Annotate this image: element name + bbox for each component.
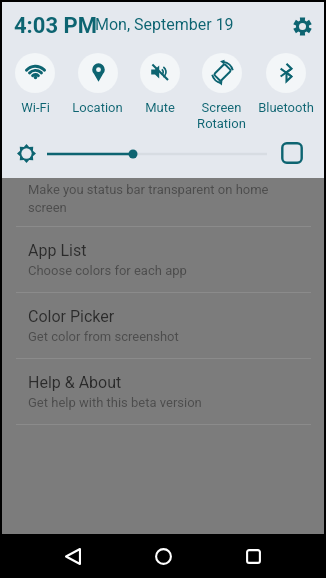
button[interactable]: Mute <box>124 50 196 132</box>
button[interactable]: Back <box>53 536 93 576</box>
button[interactable]: Screen Rotation <box>185 50 257 132</box>
staticText: Choose colors for each app <box>28 263 187 278</box>
staticText: App List <box>28 241 87 260</box>
button[interactable]: Home <box>143 536 183 576</box>
button[interactable]: Color Picker <box>2 293 324 358</box>
button[interactable]: Bluetooth <box>250 50 322 132</box>
staticText: Color Picker <box>28 307 115 326</box>
button[interactable]: Brightness <box>17 144 36 163</box>
staticText: Get help with this beta version <box>28 395 202 410</box>
staticText: Wi-Fi <box>21 100 50 115</box>
staticText: Get color from screenshot <box>28 329 179 344</box>
staticText: 4:03 PM <box>14 13 97 39</box>
button[interactable]: Location <box>61 50 133 132</box>
staticText: Make you status bar transparent on home … <box>28 182 269 215</box>
staticText: Mon, September 19 <box>95 15 234 34</box>
button[interactable]: App List <box>2 227 324 292</box>
button[interactable]: Settings <box>286 10 318 42</box>
button[interactable]: Recents <box>233 536 273 576</box>
button[interactable]: Auto brightness <box>281 142 303 164</box>
button[interactable]: Help & About <box>2 359 324 424</box>
staticText: Bluetooth <box>258 100 314 115</box>
staticText: Location <box>72 100 123 115</box>
staticText: Mute <box>145 100 175 115</box>
staticText: Screen Rotation <box>197 100 246 131</box>
button[interactable]: Wi-Fi <box>0 50 71 132</box>
staticText: Help & About <box>28 373 122 392</box>
button[interactable]: Brightness slider <box>47 146 267 162</box>
